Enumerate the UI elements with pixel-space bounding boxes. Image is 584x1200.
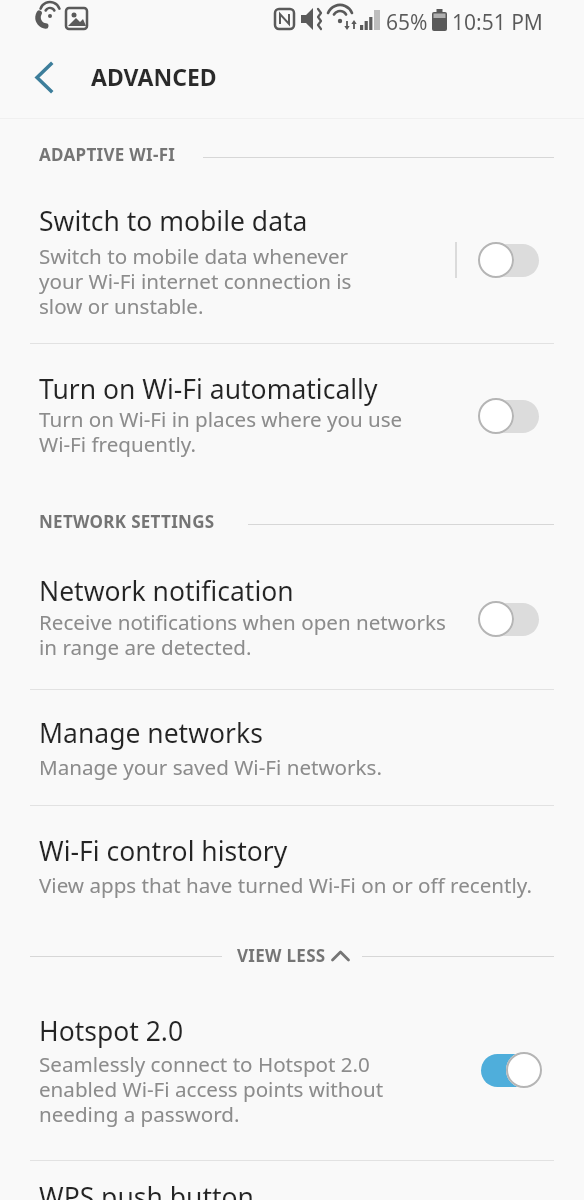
staticText: NETWORK SETTINGS [39,510,215,533]
button[interactable] [0,344,584,490]
staticText: Turn on Wi-Fi automatically [39,371,378,407]
staticText: VIEW LESS [237,944,326,967]
staticText: Switch to mobile data whenever your Wi-F… [39,242,352,320]
staticText: 65% [386,8,428,37]
staticText: ADAPTIVE WI-FI [39,143,176,166]
staticText: Hotspot 2.0 [39,1013,184,1049]
button[interactable] [0,190,584,342]
staticText: Switch to mobile data [39,203,308,239]
button[interactable] [481,400,539,433]
button[interactable] [0,690,584,805]
staticText: Network notification [39,573,294,609]
staticText: Receive notifications when open networks… [39,608,446,661]
button[interactable] [180,936,400,976]
button[interactable] [28,58,64,98]
button[interactable] [481,244,539,277]
staticText: WPS push button [39,1179,254,1200]
button[interactable] [481,603,539,636]
staticText: Manage your saved Wi-Fi networks. [39,753,382,781]
staticText: Turn on Wi-Fi in places where you use Wi… [39,405,403,458]
button[interactable] [481,1054,539,1087]
button[interactable] [0,555,584,688]
button[interactable] [0,1161,584,1200]
staticText: ADVANCED [91,61,217,92]
button[interactable] [0,806,584,926]
staticText: Manage networks [39,715,263,751]
button[interactable] [0,990,584,1156]
staticText: View apps that have turned Wi-Fi on or o… [39,871,532,899]
staticText: Seamlessly connect to Hotspot 2.0 enable… [39,1050,384,1128]
staticText: 10:51 PM [452,8,543,37]
staticText: Wi-Fi control history [39,833,288,869]
